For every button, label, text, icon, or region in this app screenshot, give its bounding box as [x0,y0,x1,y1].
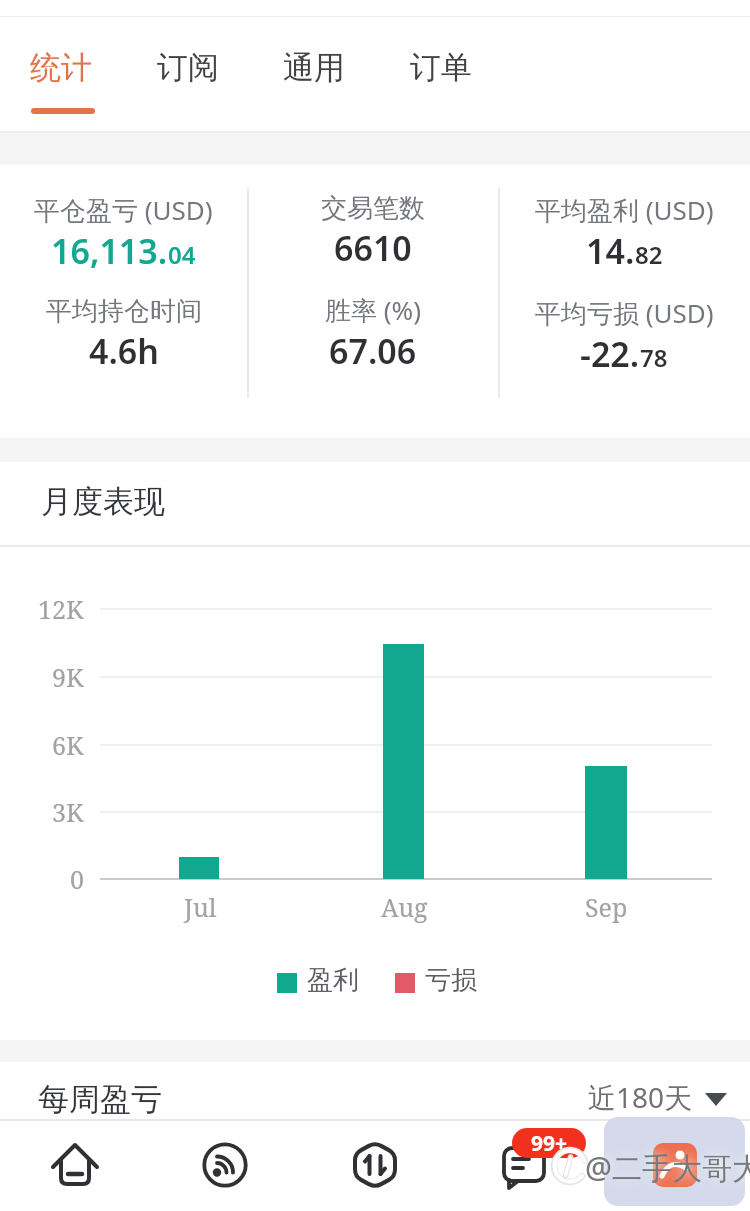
button[interactable]: 近180天 [570,1075,735,1117]
staticText: 82 [635,238,663,271]
staticText: 盈利 [307,964,359,997]
staticText: 订单 [410,48,472,87]
staticText: Sep [585,890,628,924]
staticText: 每周盈亏 [38,1080,162,1119]
button[interactable]: 通用 [271,34,363,94]
staticText: -22. [580,331,640,377]
staticText: @二手大哥大 [585,1147,750,1188]
staticText: 平仓盈亏 (USD) [34,192,213,228]
button[interactable] [330,1125,420,1205]
staticText: 平均亏损 (USD) [535,295,714,331]
staticText: 6610 [334,225,412,271]
staticText: 4.6h [89,328,159,374]
staticText: 订阅 [157,48,219,87]
button[interactable] [180,1125,270,1205]
staticText: 近180天 [588,1078,693,1116]
staticText: 交易笔数 [321,192,425,225]
staticText: 平均持仓时间 [46,295,202,328]
staticText: 平均盈利 (USD) [535,192,714,228]
button[interactable]: 订单 [398,34,490,94]
staticText: 胜率 (%) [325,292,421,328]
button[interactable]: 订阅 [145,34,237,94]
staticText: 统计 [30,48,92,87]
staticText: 月度表现 [41,482,165,521]
staticText: 亏损 [425,964,477,997]
staticText: 6K [52,728,84,762]
staticText: 99+ [531,1129,568,1158]
staticText: 16,113. [51,228,168,274]
button[interactable] [653,1143,697,1187]
staticText: 通用 [283,48,345,87]
staticText: 12K [38,592,84,626]
staticText: Aug [381,890,428,924]
staticText: 04 [168,238,196,271]
staticText: 78 [640,341,668,374]
button[interactable] [480,1125,570,1205]
staticText: 14. [586,228,635,274]
staticText: 67.06 [329,328,417,374]
staticText: 9K [52,660,84,694]
button[interactable]: 统计 [18,34,110,94]
staticText: 0 [70,862,84,896]
button[interactable] [30,1125,120,1205]
staticText: 3K [52,795,84,829]
staticText: Jul [184,890,217,924]
